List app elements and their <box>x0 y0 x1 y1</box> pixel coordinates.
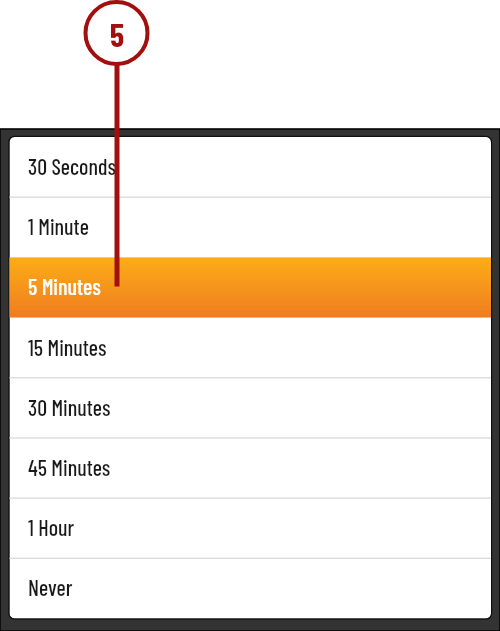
staticText: 5 Minutes <box>28 273 101 299</box>
staticText: Never <box>28 574 73 600</box>
button[interactable]: 30 Seconds <box>10 137 492 197</box>
staticText: 45 Minutes <box>28 454 111 480</box>
staticText: 5 <box>110 15 125 53</box>
button[interactable]: 5 Minutes <box>10 257 492 317</box>
staticText: 15 Minutes <box>28 334 107 360</box>
button[interactable]: 1 Hour <box>10 498 492 558</box>
other: Call-out 5 <box>110 15 125 53</box>
button[interactable]: Never <box>10 558 492 618</box>
staticText: 1 Minute <box>28 213 89 239</box>
button[interactable]: 45 Minutes <box>10 438 492 498</box>
staticText: 30 Seconds <box>28 153 116 179</box>
button[interactable]: 1 Minute <box>10 197 492 257</box>
button[interactable]: 15 Minutes <box>10 318 492 378</box>
button[interactable]: 30 Minutes <box>10 378 492 438</box>
staticText: 30 Minutes <box>28 394 111 420</box>
staticText: 1 Hour <box>28 514 75 540</box>
